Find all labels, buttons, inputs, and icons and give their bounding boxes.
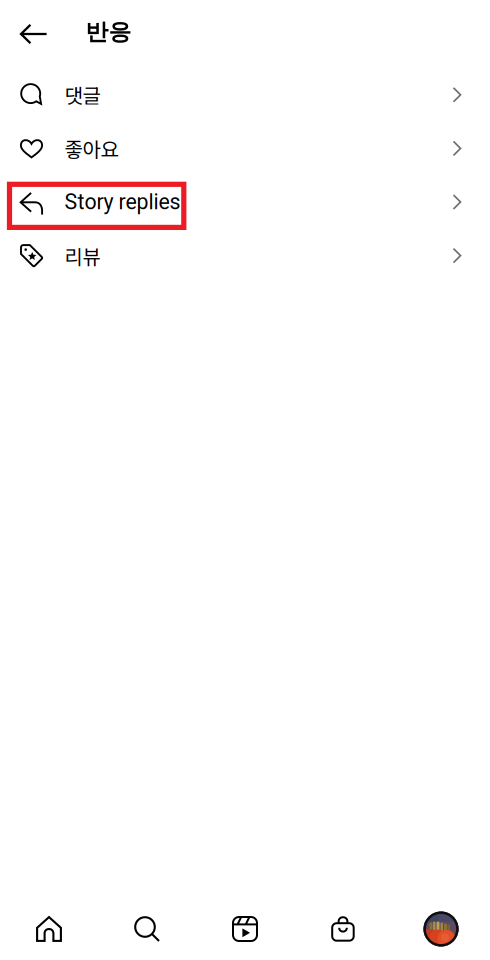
button[interactable]: Shop [294,898,392,960]
button[interactable]: Story replies [0,175,490,229]
staticText: 좋아요 [64,134,118,163]
button[interactable]: Search [98,898,196,960]
button[interactable]: Back [10,10,57,58]
button[interactable]: Reels [196,898,294,960]
staticText: 반응 [85,18,131,46]
button[interactable]: Profile [392,898,490,960]
staticText: 댓글 [64,80,100,109]
button[interactable]: 리뷰 [0,229,490,282]
button[interactable]: 댓글 [0,68,490,122]
button[interactable]: 좋아요 [0,122,490,175]
button[interactable]: Home [0,898,98,960]
staticText: Story replies [64,189,180,214]
staticText: 리뷰 [64,241,100,270]
